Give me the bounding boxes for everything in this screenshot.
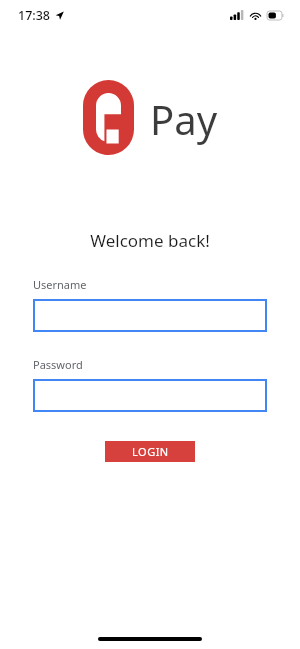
- staticText: Welcome back!: [0, 229, 300, 252]
- staticText: Password: [33, 357, 83, 372]
- button[interactable]: Username input field: [33, 299, 267, 332]
- staticText: Username: [33, 277, 87, 292]
- button[interactable]: Password input field: [33, 379, 267, 412]
- button[interactable]: LOGIN: [105, 441, 195, 462]
- staticText: Pay: [150, 92, 218, 146]
- staticText: LOGIN: [132, 444, 169, 459]
- staticText: 17:38: [18, 7, 51, 24]
